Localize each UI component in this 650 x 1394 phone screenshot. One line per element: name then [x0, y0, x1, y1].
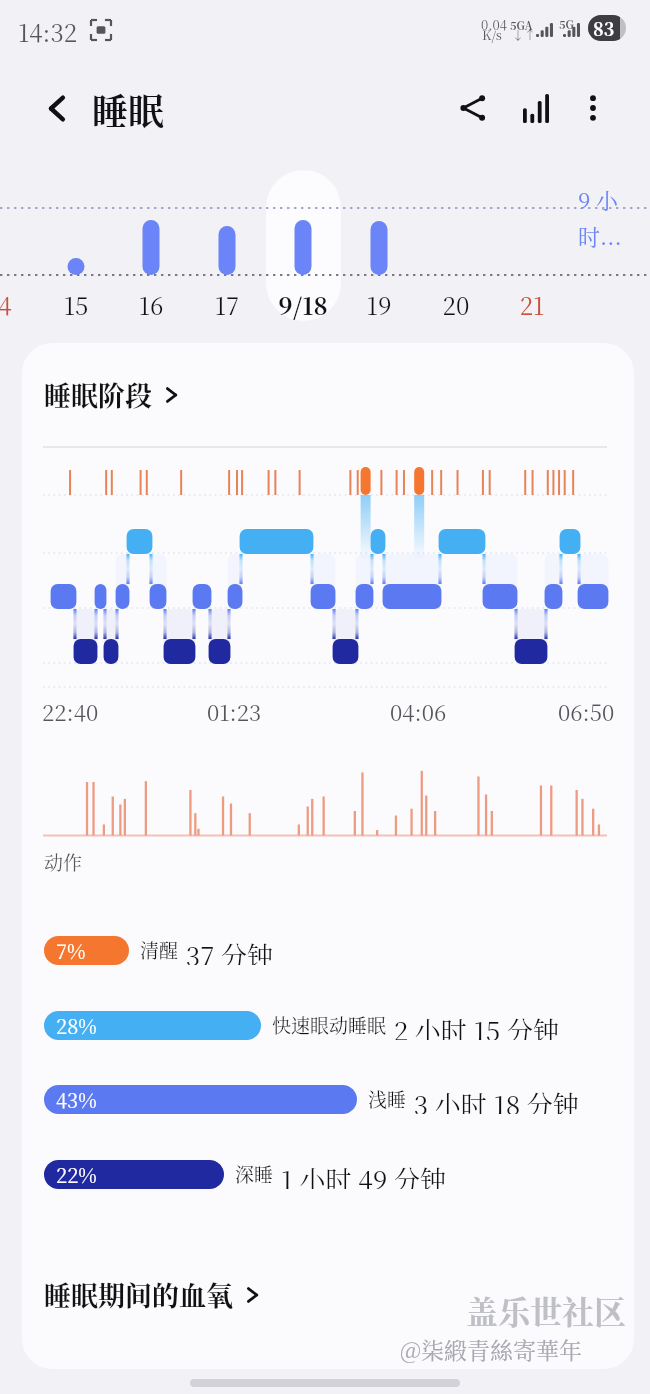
staticText: 睡眠	[92, 84, 165, 136]
button[interactable]: Statistics	[506, 78, 566, 138]
staticText: 盖乐世社区	[466, 1287, 627, 1333]
staticText: 37 分钟	[179, 936, 274, 965]
staticText: 20	[416, 287, 496, 321]
staticText: 21	[492, 287, 572, 321]
staticText: 28%	[56, 1011, 97, 1040]
button[interactable]: 7%	[44, 936, 274, 965]
staticText: 1 小时 49 分钟	[274, 1160, 446, 1189]
button[interactable]: 睡眠期间的血氧	[44, 1272, 262, 1317]
button[interactable]: 43%	[44, 1085, 579, 1114]
button[interactable]: 28%	[44, 1011, 559, 1040]
staticText: 43%	[56, 1085, 97, 1114]
button[interactable]: Share	[443, 78, 503, 138]
staticText: 5G	[559, 16, 574, 32]
button[interactable]: More options	[563, 78, 623, 138]
staticText: 17	[187, 287, 267, 321]
staticText: 9 小	[578, 184, 618, 216]
staticText: 06:50	[558, 696, 615, 728]
staticText: K/s	[482, 25, 502, 44]
staticText: 0.04	[481, 15, 507, 34]
staticText: 深睡	[235, 1160, 274, 1187]
staticText: 动作	[44, 848, 83, 875]
staticText: @柒緞青絲寄華年	[400, 1333, 582, 1366]
staticText: 15	[36, 287, 116, 321]
staticText: 83	[593, 15, 615, 41]
staticText: 19	[339, 287, 419, 321]
button[interactable]	[266, 170, 341, 321]
staticText: 16	[111, 287, 191, 321]
staticText: 快速眼动睡眠	[272, 1011, 387, 1038]
staticText: 9/18	[263, 287, 343, 321]
staticText: 睡眠期间的血氧	[44, 1275, 233, 1314]
button[interactable]: 22%	[44, 1160, 446, 1189]
staticText: 4	[0, 287, 45, 321]
staticText: ↓↑	[512, 26, 537, 43]
button[interactable]: 睡眠阶段	[44, 372, 181, 417]
staticText: 时...	[578, 220, 622, 252]
staticText: 睡眠阶段	[44, 375, 152, 414]
staticText: 22:40	[42, 696, 99, 728]
staticText: 22%	[56, 1160, 97, 1189]
staticText: 浅睡	[368, 1085, 407, 1112]
staticText: 2 小时 15 分钟	[387, 1011, 559, 1040]
staticText: 04:06	[390, 696, 447, 728]
staticText: 7%	[56, 936, 86, 965]
staticText: 清醒	[140, 936, 179, 963]
button[interactable]: Back	[32, 83, 82, 133]
staticText: 14:32	[18, 14, 78, 48]
staticText: 5GA	[510, 17, 533, 33]
staticText: 3 小时 18 分钟	[407, 1085, 579, 1114]
staticText: 01:23	[207, 696, 262, 728]
